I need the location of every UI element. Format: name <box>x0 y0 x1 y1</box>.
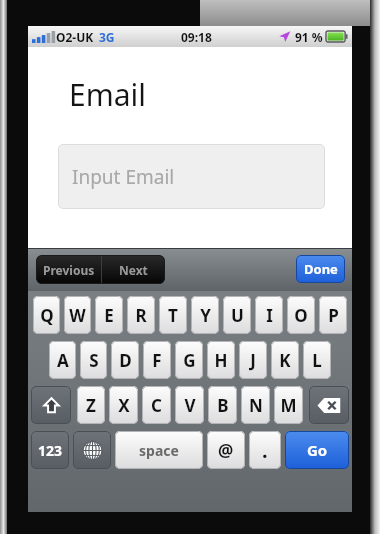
staticText: Go <box>307 440 328 460</box>
button[interactable]: Y <box>191 296 219 334</box>
staticText: 3G <box>99 29 115 45</box>
button[interactable]: J <box>239 341 267 379</box>
button[interactable]: A <box>49 341 76 379</box>
button[interactable]: B <box>208 386 237 424</box>
button[interactable]: Z <box>77 386 105 424</box>
button[interactable]: V <box>175 386 204 424</box>
button[interactable]: K <box>271 341 299 379</box>
button[interactable]: C <box>142 386 171 424</box>
button[interactable]: Shift <box>31 386 71 424</box>
staticText: space <box>139 441 179 460</box>
staticText: Q <box>40 304 54 327</box>
staticText: A <box>57 349 69 372</box>
staticText: C <box>151 394 162 417</box>
staticText: U <box>231 304 244 327</box>
staticText: G <box>183 349 196 372</box>
button[interactable]: E <box>95 296 123 334</box>
button[interactable]: M <box>274 386 303 424</box>
staticText: @ <box>218 439 234 462</box>
button[interactable]: T <box>159 296 187 334</box>
staticText: T <box>168 304 178 327</box>
button[interactable]: P <box>319 296 347 334</box>
staticText: K <box>279 349 291 372</box>
staticText: 91 % <box>295 29 323 45</box>
button[interactable]: O <box>287 296 315 334</box>
button[interactable]: Switch keyboard <box>73 431 111 469</box>
button[interactable]: Previous <box>36 255 101 284</box>
button[interactable]: W <box>64 296 91 334</box>
staticText: I <box>266 304 273 327</box>
button[interactable]: Go <box>285 431 349 469</box>
button[interactable]: Input Email <box>58 144 325 209</box>
staticText: R <box>135 304 147 327</box>
staticText: F <box>152 349 162 372</box>
staticText: W <box>69 304 86 327</box>
staticText: Done <box>304 260 338 278</box>
staticText: O2-UK <box>56 29 94 45</box>
staticText: D <box>119 349 132 372</box>
staticText: . <box>262 437 268 464</box>
staticText: N <box>249 394 263 417</box>
button[interactable]: . <box>249 431 281 469</box>
button[interactable]: Next <box>102 255 165 284</box>
staticText: 09:18 <box>181 29 212 45</box>
staticText: X <box>118 394 130 417</box>
button[interactable]: H <box>207 341 235 379</box>
staticText: B <box>217 394 229 417</box>
staticText: V <box>184 394 196 417</box>
staticText: H <box>214 349 228 372</box>
button[interactable]: G <box>175 341 203 379</box>
staticText: Y <box>200 304 211 327</box>
staticText: Previous <box>43 262 95 278</box>
staticText: O <box>294 304 308 327</box>
button[interactable]: U <box>223 296 251 334</box>
button[interactable]: Done <box>296 255 345 283</box>
button[interactable]: D <box>111 341 139 379</box>
button[interactable]: X <box>109 386 138 424</box>
button[interactable]: I <box>255 296 283 334</box>
staticText: Input Email <box>72 164 175 190</box>
button[interactable]: S <box>80 341 107 379</box>
button[interactable]: R <box>127 296 155 334</box>
staticText: Z <box>86 394 96 417</box>
staticText: 123 <box>38 441 63 460</box>
staticText: J <box>250 349 256 372</box>
button[interactable]: Q <box>33 296 60 334</box>
button[interactable]: @ <box>207 431 245 469</box>
staticText: Next <box>119 262 148 278</box>
staticText: M <box>280 394 297 417</box>
staticText: L <box>312 349 322 372</box>
staticText: S <box>89 349 99 372</box>
staticText: P <box>328 304 339 327</box>
button[interactable]: Delete <box>309 386 349 424</box>
staticText: E <box>104 304 114 327</box>
button[interactable]: F <box>143 341 171 379</box>
button[interactable]: 123 <box>31 431 69 469</box>
button[interactable]: N <box>241 386 270 424</box>
button[interactable]: space <box>115 431 203 469</box>
staticText: Email <box>69 74 147 115</box>
button[interactable]: L <box>303 341 331 379</box>
